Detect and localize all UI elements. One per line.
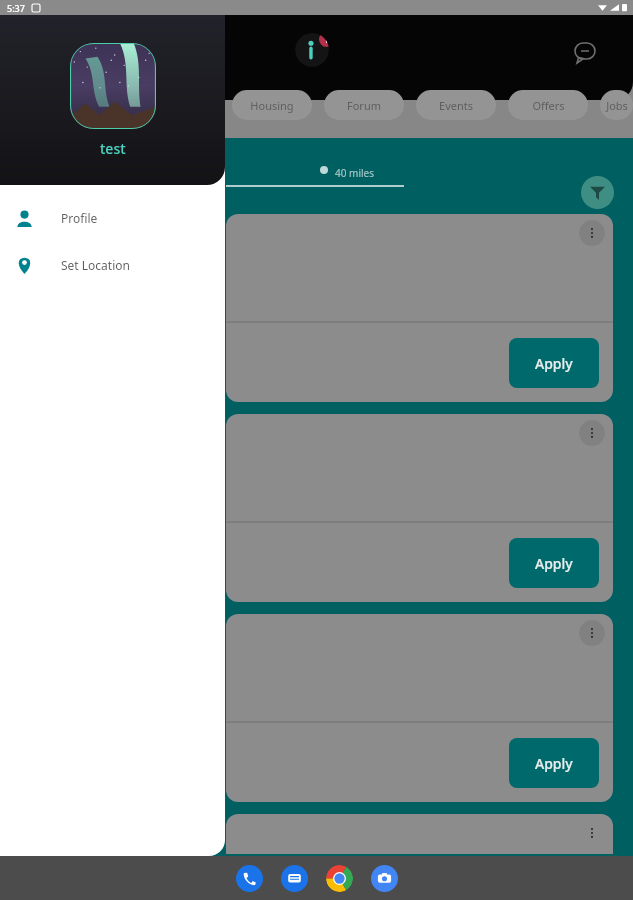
button[interactable]: More options bbox=[579, 620, 605, 646]
button[interactable]: More options bbox=[226, 214, 613, 402]
button[interactable]: Messages bbox=[568, 36, 602, 70]
staticText: 5:37 bbox=[7, 2, 25, 14]
staticText: Profile bbox=[61, 210, 98, 226]
button[interactable]: More options bbox=[579, 220, 605, 246]
button[interactable]: App bbox=[371, 865, 398, 892]
staticText: 1 bbox=[324, 34, 329, 45]
button[interactable]: Housing bbox=[232, 90, 312, 120]
staticText: Apply bbox=[535, 554, 573, 573]
button[interactable]: App bbox=[281, 865, 308, 892]
button[interactable]: Apply bbox=[509, 738, 599, 788]
button[interactable]: Apply bbox=[509, 338, 599, 388]
button[interactable]: More options bbox=[579, 820, 605, 846]
button[interactable]: Events bbox=[416, 90, 496, 120]
button[interactable]: More options bbox=[226, 414, 613, 602]
button[interactable]: Set Location bbox=[0, 248, 225, 282]
button[interactable]: App bbox=[236, 865, 263, 892]
button[interactable]: App logo bbox=[295, 33, 329, 67]
button[interactable]: Apply bbox=[509, 538, 599, 588]
staticText: test bbox=[100, 139, 126, 158]
staticText: Set Location bbox=[61, 257, 130, 273]
button[interactable]: Profile picture bbox=[70, 43, 156, 129]
button[interactable]: Jobs bbox=[600, 90, 633, 120]
button[interactable]: Profile bbox=[0, 201, 225, 235]
staticText: Offers bbox=[532, 98, 565, 113]
button[interactable]: More options bbox=[579, 420, 605, 446]
staticText: 40 miles bbox=[335, 166, 374, 180]
button[interactable]: Forum bbox=[324, 90, 404, 120]
staticText: Events bbox=[439, 98, 473, 113]
staticText: Forum bbox=[347, 98, 381, 113]
button[interactable]: Filter bbox=[581, 176, 614, 209]
staticText: Apply bbox=[535, 754, 573, 773]
button[interactable]: Chrome bbox=[326, 865, 353, 892]
staticText: Apply bbox=[535, 354, 573, 373]
button[interactable]: More options bbox=[226, 814, 613, 854]
staticText: Housing bbox=[250, 98, 294, 113]
button[interactable]: More options bbox=[226, 614, 613, 802]
button[interactable]: Offers bbox=[508, 90, 588, 120]
staticText: Jobs bbox=[606, 98, 628, 113]
